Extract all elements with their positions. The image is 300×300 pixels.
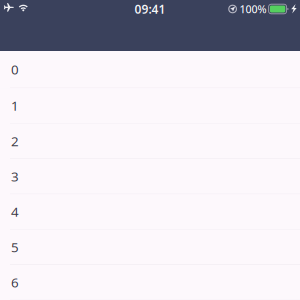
staticText: 1 — [11, 97, 19, 114]
staticText: 3 — [11, 167, 19, 185]
staticText: 100% — [240, 2, 267, 16]
staticText: 0 — [11, 60, 19, 78]
staticText: 6 — [11, 273, 19, 291]
button[interactable]: 3 — [0, 159, 300, 194]
staticText: 09:41 — [134, 1, 165, 17]
button[interactable]: 5 — [0, 230, 300, 265]
button[interactable]: 2 — [0, 124, 300, 159]
staticText: 5 — [11, 238, 19, 256]
button[interactable]: 4 — [0, 194, 300, 230]
button[interactable]: 6 — [0, 265, 300, 300]
button[interactable]: 1 — [0, 88, 300, 123]
staticText: 2 — [11, 132, 19, 150]
staticText: 4 — [11, 203, 19, 220]
button[interactable]: 0 — [0, 51, 300, 88]
